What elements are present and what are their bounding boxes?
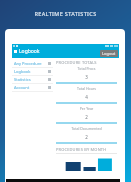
staticText: Account: [14, 85, 30, 90]
staticText: REALTIME STATISTICS: [0, 10, 131, 17]
staticText: PROCEDURES BY MONTH: [56, 147, 107, 152]
staticText: Total Documented: [56, 126, 117, 131]
staticText: 2: [56, 114, 117, 120]
staticText: Total Procs: [56, 66, 117, 71]
staticText: Statistics: [14, 77, 31, 82]
staticText: Logbook: [19, 48, 40, 55]
button[interactable]: Account: [12, 84, 53, 91]
staticText: 2: [56, 134, 117, 140]
staticText: Logbook: [14, 69, 31, 74]
staticText: PROCEDURE TOTALS: [56, 60, 97, 65]
staticText: Total Hours: [56, 86, 117, 91]
staticText: 3: [56, 74, 117, 80]
staticText: Per Year: [56, 106, 117, 111]
button[interactable]: Total Hours: [56, 86, 117, 106]
button[interactable]: Total Procs: [56, 66, 117, 86]
button[interactable]: Logout: [100, 50, 118, 57]
button[interactable]: Total Documented: [56, 126, 117, 146]
button[interactable]: Statistics: [12, 76, 53, 83]
button[interactable]: Any Procedure: [12, 60, 53, 67]
button[interactable]: Per Year: [56, 106, 117, 126]
staticText: Any Procedure: [14, 61, 42, 66]
staticText: Logout: [102, 51, 116, 56]
button[interactable]: Logbook: [12, 68, 53, 75]
button[interactable]: Logbook: [14, 48, 40, 55]
staticText: 4: [56, 94, 117, 100]
